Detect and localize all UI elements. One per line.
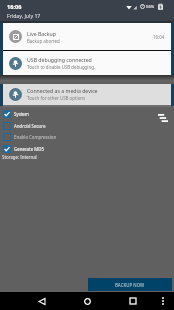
button[interactable]: Enable Compression (0, 131, 174, 142)
button[interactable]: Connected as a media device (3, 84, 171, 105)
staticText: 16:04 (153, 34, 165, 40)
button[interactable]: Live Backup (3, 23, 171, 50)
staticText: Touch for other USB options (27, 95, 86, 101)
staticText: Generate MD5 (14, 146, 44, 152)
staticText: System (14, 111, 29, 117)
staticText: Live Backup (27, 30, 56, 37)
staticText: Friday, July 17 (7, 12, 41, 19)
staticText: Enable Compression (14, 134, 57, 140)
button[interactable]: Back (35, 292, 49, 310)
staticText: 16:06 (7, 3, 22, 11)
staticText: Storage: Internal (2, 154, 37, 160)
staticText: Android Secure (14, 123, 46, 129)
button[interactable]: USB debugging connected (3, 51, 171, 75)
button[interactable]: Generate MD5 (0, 143, 174, 154)
button[interactable]: Android Secure (0, 120, 174, 131)
staticText: BACKUP NOW (115, 282, 145, 288)
staticText: USB debugging connected (27, 56, 92, 63)
staticText: Backup aborted (27, 38, 60, 44)
staticText: Touch to disable USB debugging. (27, 64, 96, 70)
button[interactable]: BACKUP NOW (88, 278, 172, 291)
button[interactable]: More options (156, 292, 169, 310)
button[interactable]: System (0, 108, 174, 119)
button[interactable]: Sort (155, 110, 171, 126)
staticText: Connected as a media device (27, 87, 98, 94)
button[interactable]: Home (80, 292, 94, 310)
staticText: 56% (146, 4, 155, 10)
button[interactable]: Recent apps (126, 292, 140, 310)
